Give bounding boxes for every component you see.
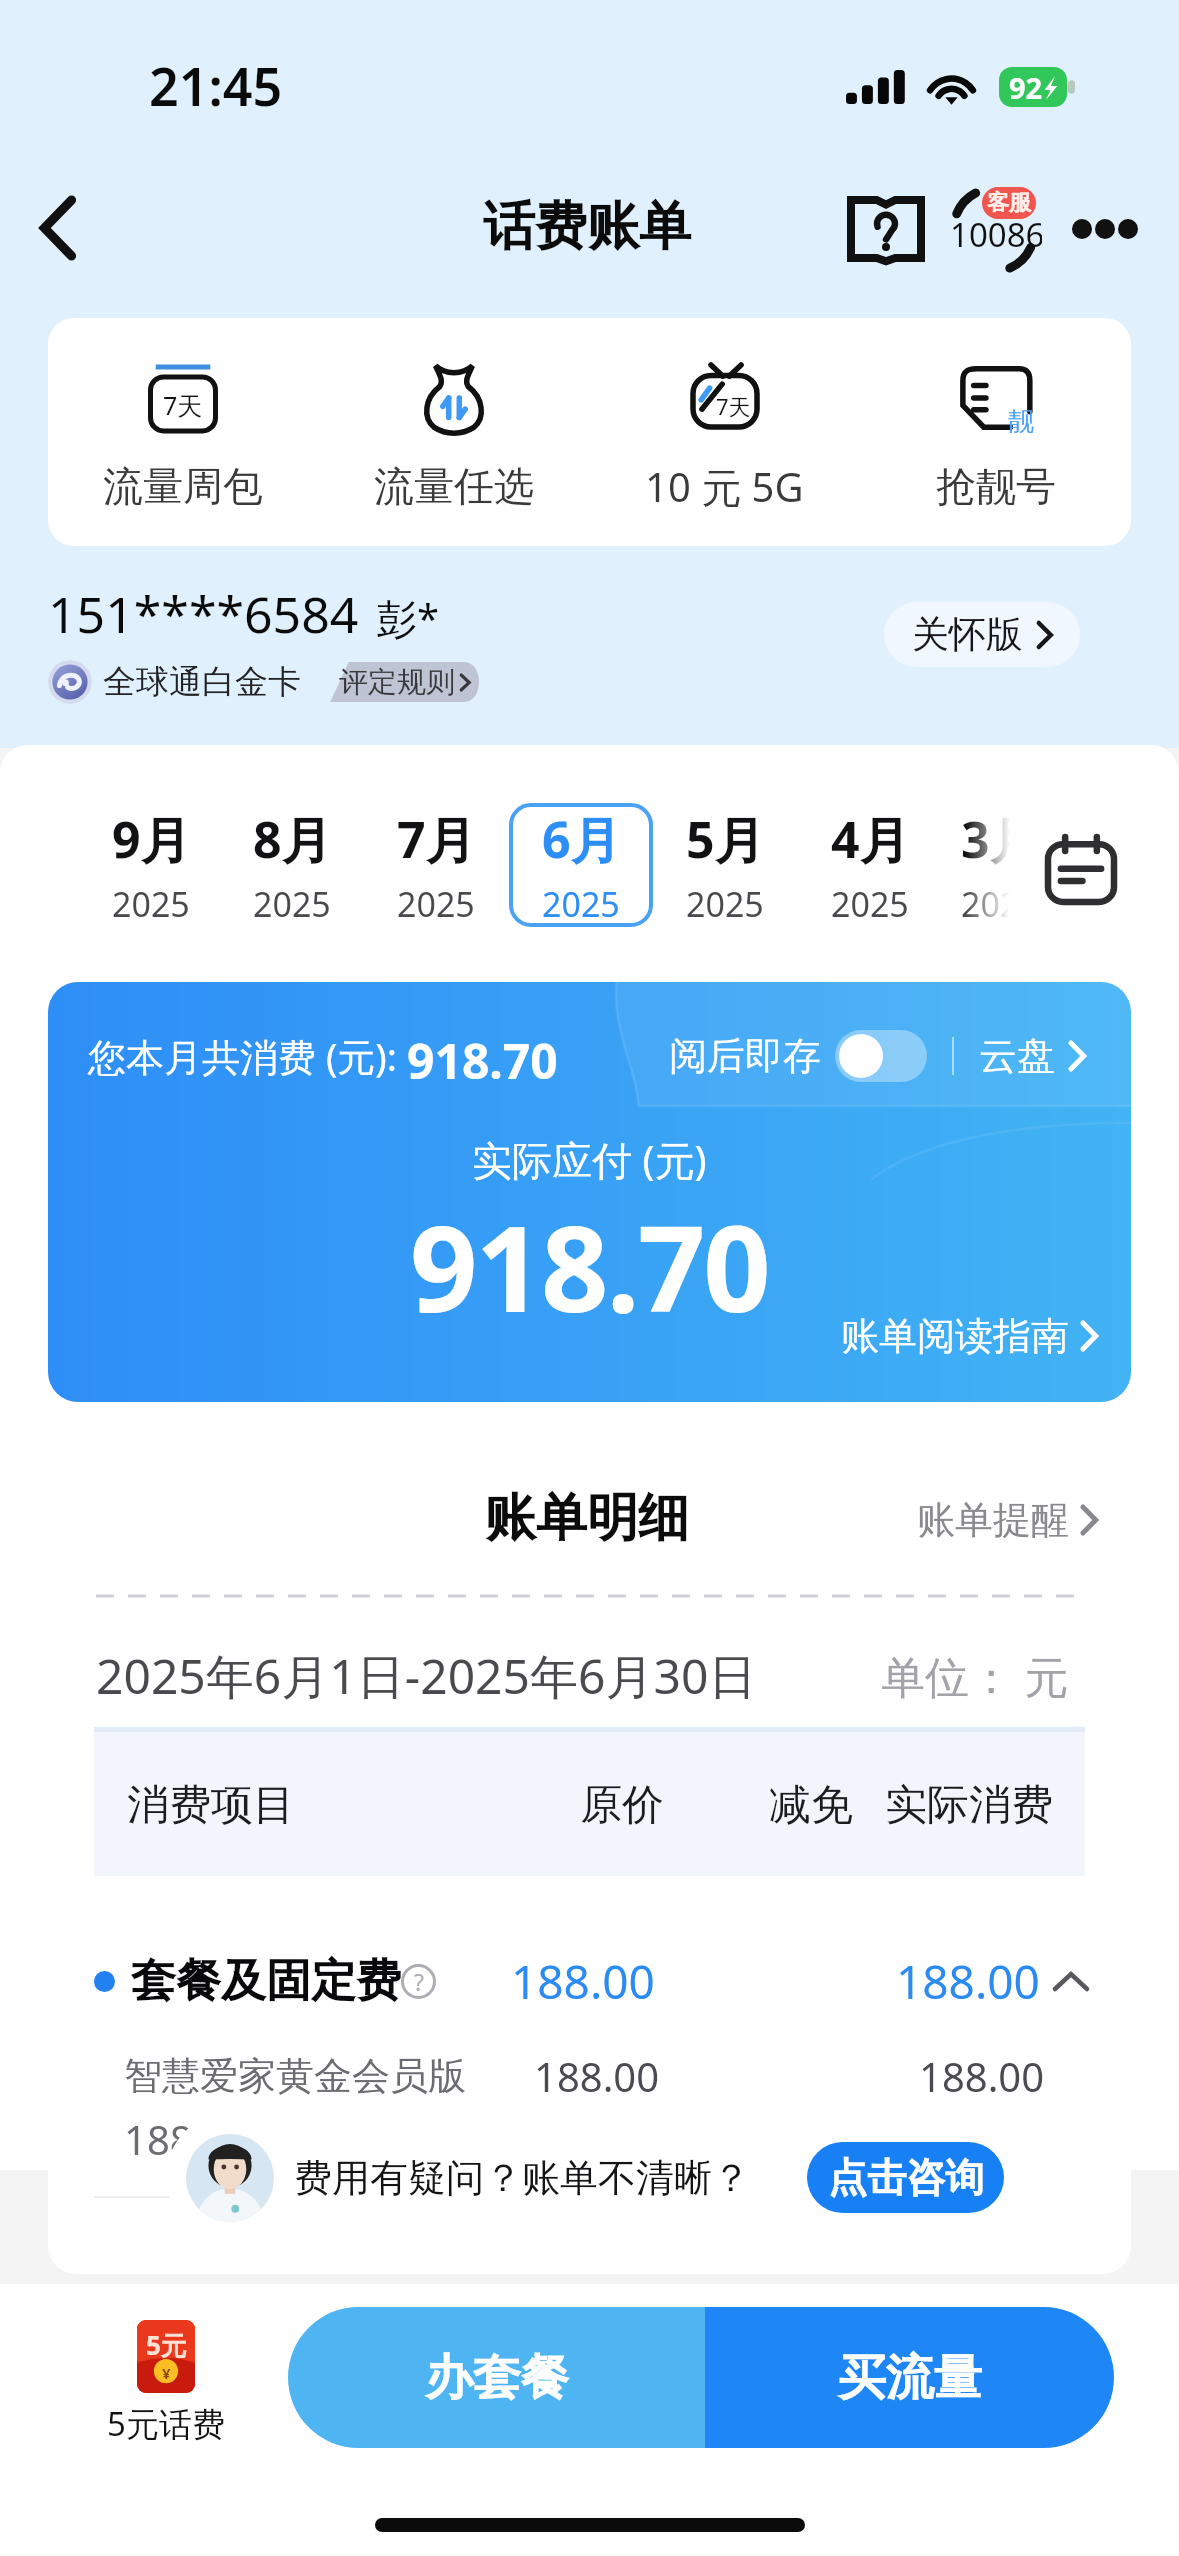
staticText: 8月	[253, 805, 332, 873]
button[interactable]: 账单提醒	[917, 1496, 1097, 1544]
button[interactable]: 买流量	[705, 2307, 1114, 2448]
staticText: 10086	[950, 212, 1042, 257]
staticText: 21:45	[149, 50, 283, 121]
staticText: ?	[414, 1966, 424, 1997]
button[interactable]: 9月	[81, 805, 221, 925]
staticText: 单位： 元	[881, 1646, 1069, 1706]
staticText: 5元	[146, 2327, 187, 2363]
staticText: 账单明细	[485, 1486, 689, 1550]
staticText: 2025	[831, 881, 909, 925]
staticText: 套餐及固定费	[131, 1953, 401, 2010]
staticText: 流量周包	[103, 461, 263, 511]
staticText: 188.00	[511, 1950, 655, 2013]
button[interactable]: 5月	[655, 805, 795, 925]
button[interactable]: 关怀版	[884, 602, 1080, 667]
staticText: 7天	[716, 391, 751, 421]
staticText: 188.00	[896, 1950, 1040, 2013]
button[interactable]: 4月	[800, 805, 940, 925]
staticText: 费用有疑问？账单不清晰？	[294, 2154, 750, 2202]
button[interactable]: 3月	[930, 805, 1070, 925]
button[interactable]: 套餐及固定费	[48, 1942, 1131, 2020]
button[interactable]: More options	[1064, 188, 1146, 270]
staticText: 智慧爱家黄金会员版	[124, 2052, 466, 2100]
staticText: 188.00	[919, 2049, 1045, 2103]
staticText: 话费账单	[483, 194, 691, 260]
button[interactable]: 7天	[48, 318, 318, 546]
staticText: 9月	[112, 805, 191, 873]
button[interactable]: Customer service 10086	[948, 184, 1040, 276]
staticText: 账单提醒	[917, 1496, 1069, 1544]
button[interactable]: Choose month	[1036, 827, 1126, 913]
staticText: 您本月共消费 (元):	[88, 1030, 407, 1082]
staticText: 抢靓号	[936, 461, 1056, 511]
staticText: 10 元 5G	[645, 459, 804, 514]
staticText: 彭*	[377, 590, 440, 645]
staticText: 2025	[397, 881, 475, 925]
staticText: 2025	[686, 881, 764, 925]
button[interactable]: 8月	[222, 805, 362, 925]
staticText: 5月	[686, 805, 765, 873]
button[interactable]: 评定规则	[315, 662, 484, 702]
staticText: 918.70	[410, 1186, 769, 1347]
staticText: 2025	[253, 881, 331, 925]
staticText: 92	[1009, 68, 1043, 107]
button[interactable]: 7天	[589, 318, 860, 546]
staticText: 2025	[542, 881, 620, 925]
staticText: 2025年6月1日-2025年6月30日	[96, 1643, 757, 1709]
staticText: 7月	[397, 805, 476, 873]
button[interactable]: 云盘	[979, 1032, 1085, 1080]
staticText: 靓	[1008, 405, 1034, 438]
staticText: 4月	[831, 805, 910, 873]
button[interactable]: Save after reading toggle	[835, 1030, 927, 1082]
staticText: 流量任选	[374, 461, 534, 511]
staticText: 消费项目	[127, 1779, 295, 1832]
staticText: 账单阅读指南	[841, 1312, 1069, 1360]
staticText: 关怀版	[912, 611, 1023, 658]
staticText: 2025	[961, 881, 1039, 925]
button[interactable]: 账单阅读指南	[841, 1312, 1097, 1360]
staticText: ¥	[162, 2363, 171, 2383]
staticText: 买流量	[838, 2348, 982, 2408]
staticText: 云盘	[979, 1032, 1055, 1080]
staticText: 7天	[163, 388, 203, 422]
staticText: 实际消费	[885, 1779, 1053, 1832]
staticText: 188.00	[534, 2049, 660, 2103]
button[interactable]: Help guide	[845, 188, 927, 270]
button[interactable]: 费用有疑问？账单不清晰？	[166, 2112, 1017, 2243]
staticText: 全球通白金卡	[103, 661, 301, 703]
staticText: 2025	[112, 881, 190, 925]
button[interactable]: Back	[12, 182, 104, 274]
staticText: 办套餐	[425, 2348, 569, 2408]
staticText: 客服	[987, 189, 1031, 217]
staticText: 151****6584	[48, 580, 359, 648]
staticText: 918.70	[407, 1028, 558, 1084]
button[interactable]: 阅后即存	[669, 1030, 927, 1082]
staticText: 减免	[769, 1779, 853, 1832]
staticText: 阅后即存	[669, 1032, 821, 1080]
staticText: 3月	[961, 805, 1040, 873]
button[interactable]: 办套餐	[288, 2307, 705, 2448]
staticText: 6月	[542, 805, 621, 873]
button[interactable]: 靓	[860, 318, 1131, 546]
staticText: 原价	[580, 1779, 664, 1832]
button[interactable]: 5元	[96, 2320, 236, 2446]
button[interactable]: 流量任选	[318, 318, 589, 546]
staticText: 5元话费	[107, 2401, 225, 2446]
staticText: 实际应付 (元)	[472, 1132, 707, 1187]
button[interactable]: 6月	[511, 805, 651, 925]
staticText: 188	[124, 2112, 193, 2166]
staticText: 评定规则	[339, 664, 455, 701]
button[interactable]: 7月	[366, 805, 506, 925]
button[interactable]: 点击咨询	[807, 2142, 1004, 2213]
staticText: 点击咨询	[814, 2153, 998, 2202]
